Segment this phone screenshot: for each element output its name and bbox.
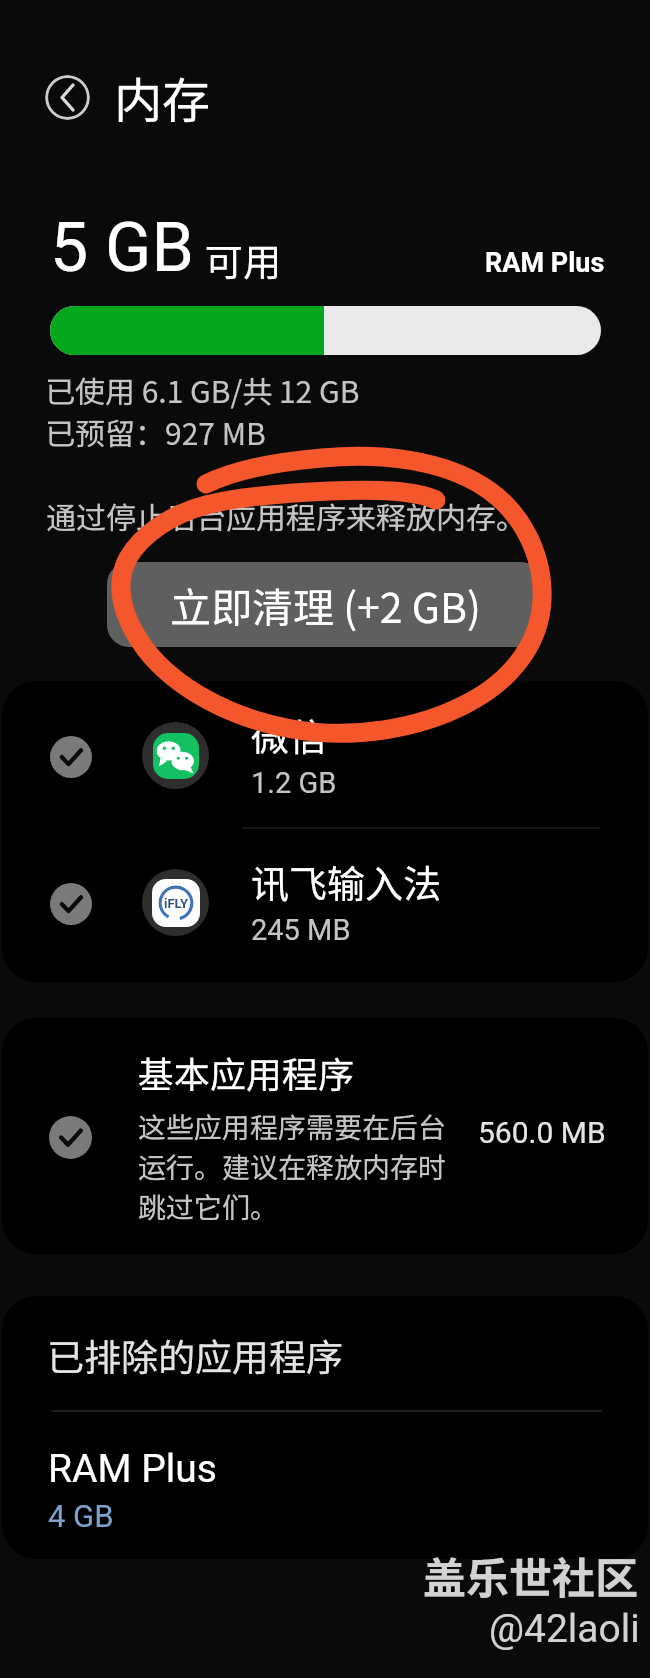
staticText: RAM Plus [485, 247, 605, 279]
button[interactable]: Back [45, 75, 90, 120]
button[interactable]: 基本应用程序 [2, 1018, 648, 1254]
staticText: 已预留：927 MB [45, 410, 266, 453]
staticText: 4 GB [48, 1498, 114, 1534]
staticText: 内存 [114, 62, 211, 132]
staticText: 1.2 GB [251, 766, 337, 800]
staticText: 立即清理 (+2 GB) [170, 575, 481, 634]
button[interactable]: iFLY [2, 830, 648, 977]
button[interactable]: RAM Plus [2, 1446, 648, 1534]
staticText: 讯飞输入法 [251, 854, 442, 909]
staticText: 可用 [205, 232, 282, 287]
staticText: RAM Plus [48, 1446, 217, 1492]
staticText: 560.0 MB [478, 1115, 606, 1150]
staticText: 这些应用程序需要在后台 运行。建议在释放内存时 跳过它们。 [138, 1106, 447, 1226]
staticText: 通过停止后台应用程序来释放内存。 [46, 494, 526, 537]
button[interactable]: 立即清理 (+2 GB) [107, 562, 543, 647]
staticText: 盖乐世社区 [423, 1544, 638, 1606]
button[interactable]: 微信 [2, 683, 648, 830]
staticText: 微信 [251, 707, 328, 762]
staticText: 已使用 6.1 GB/共 12 GB [45, 368, 360, 411]
staticText: iFLY [164, 896, 188, 911]
staticText: 已排除的应用程序 [47, 1328, 343, 1382]
staticText: 5 GB [50, 208, 194, 288]
staticText: 基本应用程序 [138, 1046, 355, 1098]
staticText: @42laoli [489, 1606, 640, 1652]
staticText: 245 MB [251, 913, 351, 947]
